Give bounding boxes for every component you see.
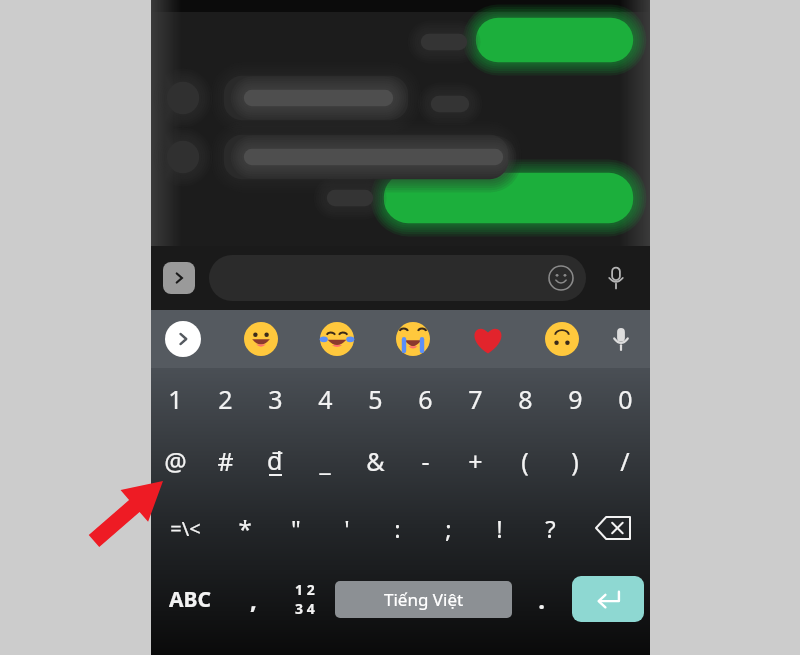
- staticText: ?: [545, 512, 556, 545]
- staticText: 9: [568, 382, 583, 416]
- staticText: !: [496, 512, 503, 545]
- button[interactable]: 1: [151, 368, 200, 430]
- button[interactable]: 8: [500, 368, 550, 430]
- button[interactable]: 7: [450, 368, 500, 430]
- button[interactable]: =\<: [151, 492, 219, 564]
- staticText: =\<: [170, 515, 201, 542]
- staticText: 8: [518, 382, 533, 416]
- button[interactable]: Expand: [163, 262, 195, 294]
- staticText: *: [238, 512, 252, 545]
- button[interactable]: Emoji 5: [543, 320, 581, 358]
- staticText: 4: [318, 382, 333, 416]
- staticText: 7: [468, 382, 483, 416]
- button[interactable]: Backspace: [576, 492, 650, 564]
- staticText: @: [164, 444, 187, 478]
- staticText: +: [468, 444, 483, 478]
- staticText: .: [538, 583, 545, 616]
- staticText: &: [366, 444, 385, 478]
- staticText: ): [571, 444, 579, 478]
- button[interactable]: &: [350, 430, 400, 492]
- button[interactable]: *: [219, 492, 270, 564]
- staticText: ": [291, 512, 301, 545]
- button[interactable]: 5: [350, 368, 400, 430]
- button[interactable]: ': [321, 492, 372, 564]
- button[interactable]: 6: [400, 368, 450, 430]
- button[interactable]: @: [151, 430, 200, 492]
- button[interactable]: Emoji: [209, 255, 586, 301]
- button[interactable]: ABC: [151, 564, 228, 634]
- button[interactable]: ;: [423, 492, 474, 564]
- button[interactable]: Voice: [601, 319, 641, 359]
- button[interactable]: Tiếng Việt: [335, 581, 512, 618]
- staticText: 5: [368, 382, 383, 416]
- staticText: _: [319, 444, 331, 478]
- staticText: ,: [250, 583, 257, 616]
- staticText: đ: [267, 443, 283, 477]
- button[interactable]: 3: [250, 368, 300, 430]
- button[interactable]: Emoji 2: [318, 320, 356, 358]
- staticText: 1: [168, 382, 183, 416]
- staticText: (: [521, 444, 529, 478]
- button[interactable]: Emoji 1: [242, 320, 280, 358]
- button[interactable]: More: [165, 321, 201, 357]
- button[interactable]: #: [200, 430, 250, 492]
- button[interactable]: Voice message: [594, 256, 638, 300]
- staticText: #: [217, 444, 234, 478]
- button[interactable]: _: [300, 430, 350, 492]
- button[interactable]: Emoji 4: [469, 320, 507, 358]
- button[interactable]: /: [600, 430, 650, 492]
- staticText: 1 2: [295, 580, 315, 599]
- staticText: 3: [268, 382, 283, 416]
- staticText: 6: [418, 382, 433, 416]
- button[interactable]: ,: [228, 564, 278, 634]
- staticText: ;: [445, 512, 452, 545]
- button[interactable]: :: [372, 492, 423, 564]
- staticText: Tiếng Việt: [384, 588, 464, 611]
- button[interactable]: 1 2: [278, 564, 331, 634]
- staticText: ': [344, 512, 350, 545]
- staticText: -: [421, 444, 430, 478]
- button[interactable]: đ: [250, 430, 300, 492]
- button[interactable]: 4: [300, 368, 350, 430]
- button[interactable]: 0: [600, 368, 650, 430]
- staticText: /: [620, 444, 630, 478]
- button[interactable]: ?: [525, 492, 576, 564]
- button[interactable]: +: [450, 430, 500, 492]
- button[interactable]: Emoji 3: [394, 320, 432, 358]
- button[interactable]: (: [500, 430, 550, 492]
- staticText: 0: [618, 382, 633, 416]
- button[interactable]: Emoji: [546, 263, 576, 293]
- button[interactable]: .: [516, 564, 566, 634]
- staticText: ABC: [169, 585, 211, 614]
- button[interactable]: !: [474, 492, 525, 564]
- button[interactable]: 2: [200, 368, 250, 430]
- button[interactable]: ): [550, 430, 600, 492]
- staticText: 3 4: [295, 599, 315, 618]
- button[interactable]: ": [270, 492, 321, 564]
- button[interactable]: 9: [550, 368, 600, 430]
- button[interactable]: Enter: [572, 576, 644, 622]
- button[interactable]: -: [400, 430, 450, 492]
- staticText: 2: [218, 382, 233, 416]
- staticText: :: [394, 512, 401, 545]
